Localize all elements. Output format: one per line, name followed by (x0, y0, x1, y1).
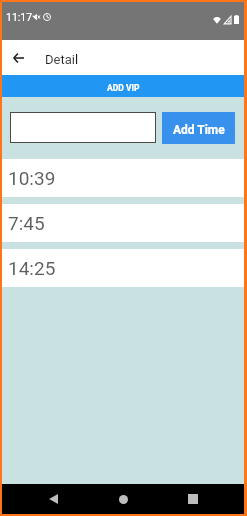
button[interactable]: Add Time (162, 112, 235, 144)
button[interactable] (10, 112, 156, 143)
staticText: ADD VIP (107, 83, 140, 93)
staticText: 10:39 (8, 167, 56, 189)
staticText: Add Time (173, 123, 225, 137)
staticText: 11:17 (6, 11, 33, 23)
button[interactable]: Recents (175, 484, 211, 514)
staticText: 7:45 (8, 212, 45, 234)
button[interactable]: 10:39 (2, 159, 244, 197)
button[interactable]: ADD VIP (2, 75, 244, 97)
button[interactable]: Home (105, 484, 141, 514)
staticText: Detail (45, 52, 79, 67)
button[interactable]: Back (35, 484, 71, 514)
button[interactable]: Back (2, 40, 34, 75)
button[interactable]: 14:25 (2, 249, 244, 287)
button[interactable]: 7:45 (2, 204, 244, 242)
staticText: 14:25 (8, 257, 56, 279)
